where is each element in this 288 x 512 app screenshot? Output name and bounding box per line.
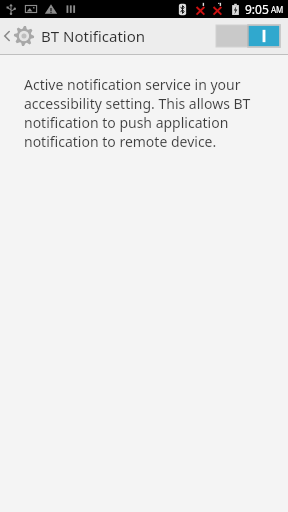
staticText: AM bbox=[271, 4, 284, 15]
staticText: 9:05 bbox=[245, 1, 269, 17]
staticText: BT Notification bbox=[41, 26, 146, 46]
button[interactable]: BT Notification bbox=[0, 18, 154, 54]
staticText: Active notification service in your acce… bbox=[24, 75, 266, 151]
button[interactable]: Enable BT Notification bbox=[216, 25, 280, 47]
